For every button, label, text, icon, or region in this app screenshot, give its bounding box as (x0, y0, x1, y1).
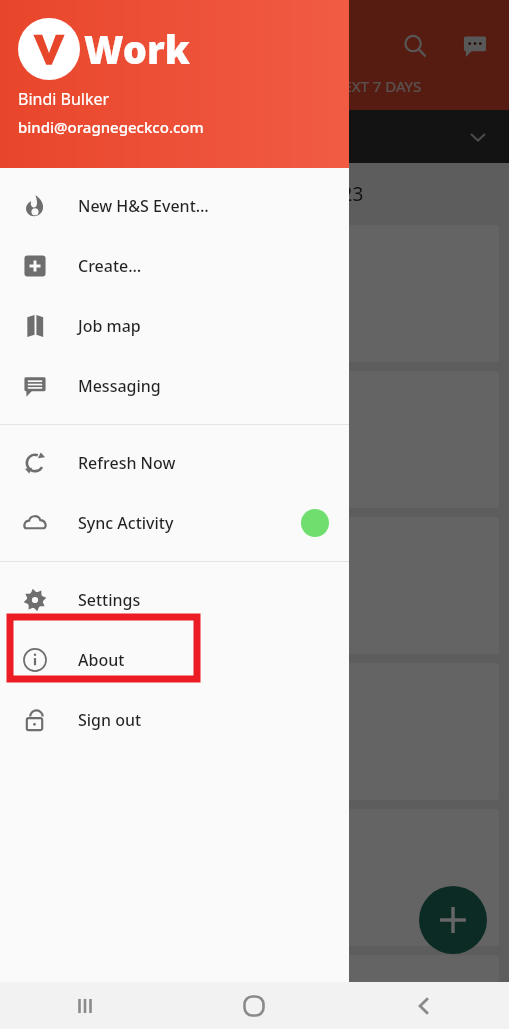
button[interactable]: Sign out (0, 690, 349, 750)
staticText: About (78, 649, 125, 671)
staticText: bindi@oragnegeckco.com (18, 117, 204, 137)
staticText: Job map (78, 315, 141, 337)
button[interactable]: About (0, 630, 349, 690)
button[interactable] (10, 371, 499, 508)
staticText: New H&S Event… (78, 195, 209, 217)
button[interactable]: Recents (0, 982, 169, 1029)
button[interactable]: Search (395, 26, 435, 66)
button[interactable]: Add (419, 886, 487, 954)
button[interactable] (10, 663, 499, 800)
button[interactable]: Home (169, 982, 339, 1029)
staticText: Create… (78, 255, 142, 277)
button[interactable] (10, 225, 499, 362)
staticText: Refresh Now (78, 452, 176, 474)
staticText: ... 2023 (270, 181, 364, 207)
button[interactable] (10, 809, 499, 946)
staticText: Sign out (78, 709, 142, 731)
button[interactable]: Sync Activity (0, 493, 349, 553)
button[interactable] (10, 517, 499, 654)
button[interactable]: Back (339, 982, 509, 1029)
button[interactable]: Messages (455, 26, 495, 66)
button[interactable]: Create… (0, 236, 349, 296)
staticText: Work (84, 23, 190, 75)
staticText: Sync Activity (78, 512, 174, 534)
staticText: NEXT 7 DAYS (332, 76, 422, 96)
button[interactable]: Messaging (0, 356, 349, 416)
button[interactable] (10, 955, 499, 982)
button[interactable]: Job map (0, 296, 349, 356)
staticText: Settings (78, 589, 141, 611)
button[interactable]: New H&S Event… (0, 176, 349, 236)
staticText: Bindi Bulker (18, 88, 110, 110)
button[interactable]: Refresh Now (0, 433, 349, 493)
staticText: Messaging (78, 375, 161, 397)
button[interactable]: Expand (463, 122, 493, 152)
button[interactable]: Settings (0, 570, 349, 630)
